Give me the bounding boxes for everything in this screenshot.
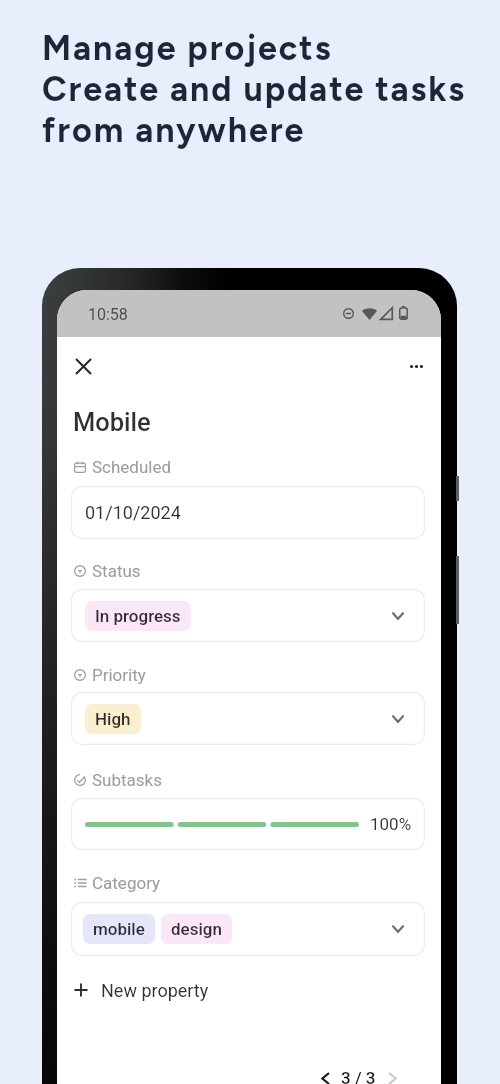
staticText: Status <box>92 561 141 581</box>
button[interactable]: mobile <box>71 902 425 956</box>
staticText: In progress <box>95 606 181 626</box>
staticText: Manage projects <box>42 28 333 69</box>
staticText: 3 / 3 <box>341 1068 376 1084</box>
staticText: from anywhere <box>42 110 306 151</box>
staticText: New property <box>101 980 209 1001</box>
staticText: 01/10/2024 <box>85 502 181 523</box>
button[interactable]: High <box>71 692 425 745</box>
button[interactable]: 01/10/2024 <box>71 486 425 539</box>
button[interactable]: Next <box>380 1066 404 1084</box>
button[interactable]: Close <box>66 349 100 383</box>
button[interactable]: 100% <box>71 798 425 850</box>
staticText: Scheduled <box>92 457 172 477</box>
button[interactable]: New property <box>71 972 209 1008</box>
button[interactable]: More options <box>399 349 433 383</box>
button[interactable]: Previous <box>313 1066 337 1084</box>
staticText: Create and update tasks <box>42 69 467 110</box>
staticText: Category <box>92 873 161 893</box>
staticText: design <box>171 919 222 939</box>
staticText: Subtasks <box>92 770 162 790</box>
staticText: Priority <box>92 665 146 685</box>
staticText: High <box>95 709 131 729</box>
staticText: 100% <box>370 814 412 834</box>
staticText: Mobile <box>73 407 151 437</box>
button[interactable]: In progress <box>71 589 425 642</box>
staticText: 10:58 <box>88 305 128 324</box>
staticText: mobile <box>93 919 145 939</box>
